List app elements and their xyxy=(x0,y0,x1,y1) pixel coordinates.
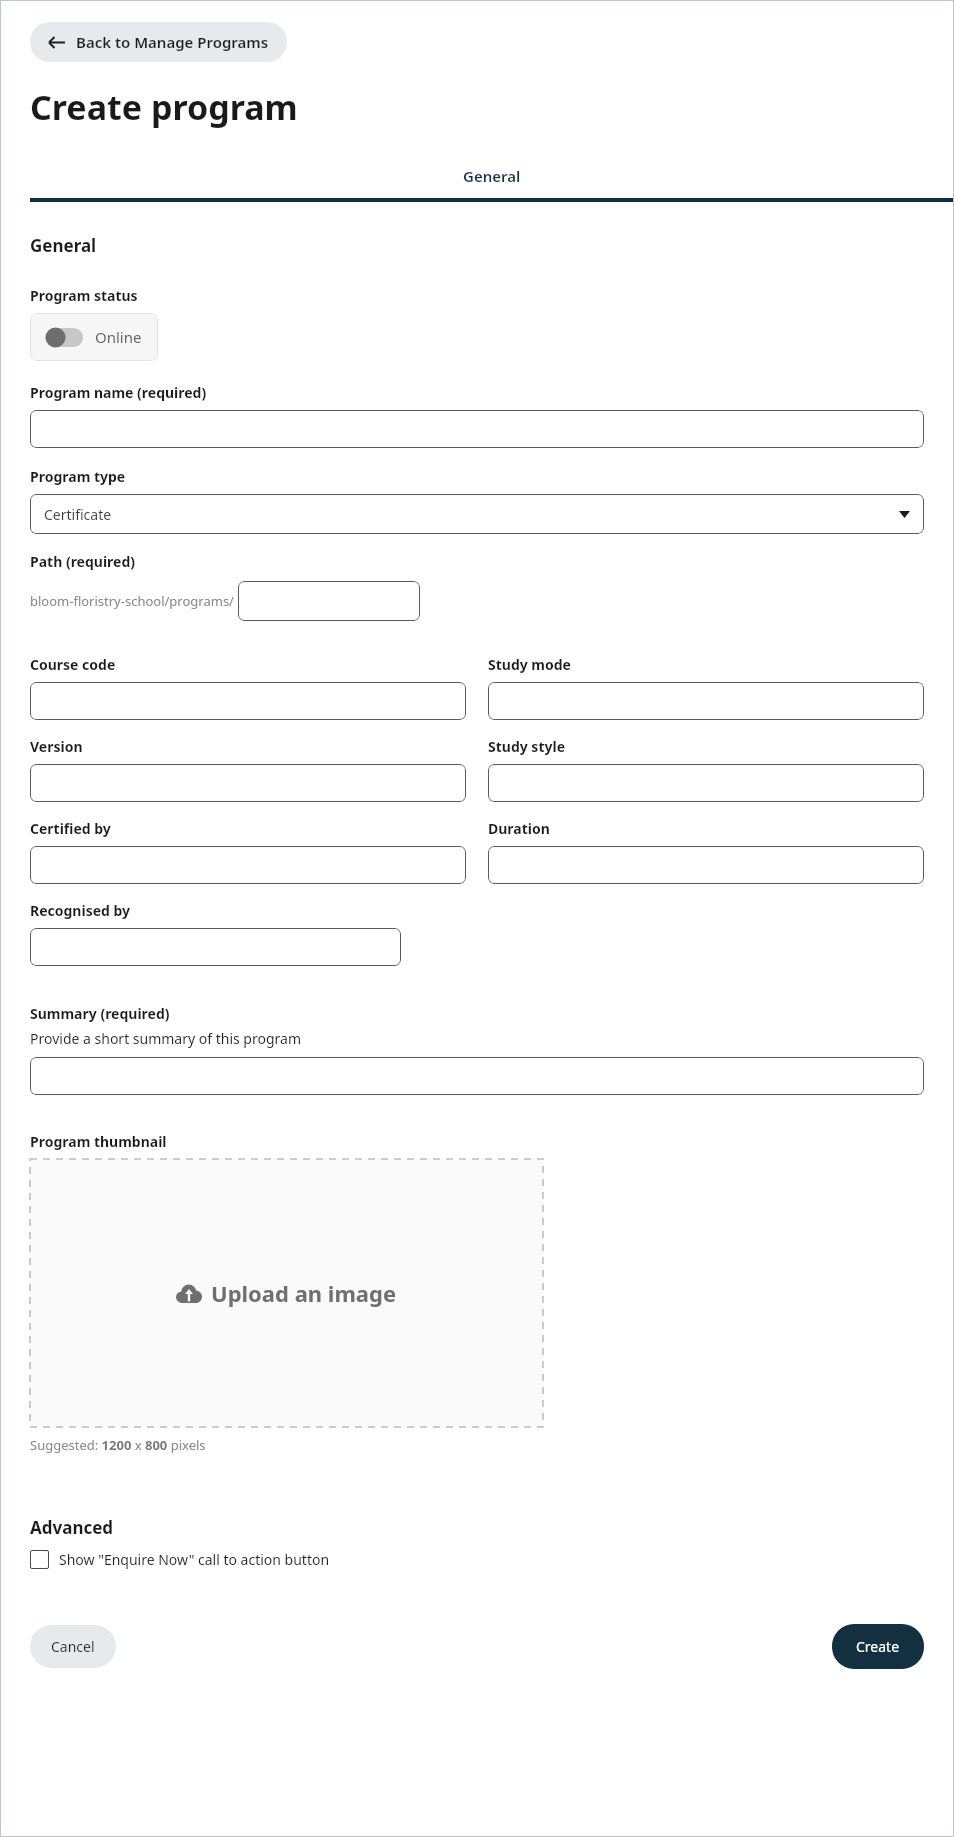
button[interactable] xyxy=(30,682,466,720)
staticText: Suggested: 1200 x 800 pixels xyxy=(30,1436,206,1454)
button[interactable] xyxy=(238,581,420,621)
staticText: Create program xyxy=(30,84,298,130)
button[interactable]: Certificate xyxy=(30,494,924,534)
staticText: Online xyxy=(95,327,142,347)
button[interactable]: Back to Manage Programs xyxy=(30,22,287,62)
staticText: Version xyxy=(30,737,83,756)
staticText: Path (required) xyxy=(30,552,136,571)
staticText: Upload an image xyxy=(211,1278,397,1308)
button[interactable]: General xyxy=(30,160,954,202)
staticText: Program status xyxy=(30,286,138,305)
staticText: Provide a short summary of this program xyxy=(30,1029,302,1048)
button[interactable]: Show "Enquire Now" call to action button xyxy=(30,1550,330,1569)
staticText: Duration xyxy=(488,819,550,838)
button[interactable] xyxy=(30,928,401,966)
staticText: Course code xyxy=(30,655,116,674)
button[interactable]: Cancel xyxy=(30,1625,116,1668)
staticText: Program thumbnail xyxy=(30,1132,167,1151)
staticText: Study mode xyxy=(488,655,571,674)
button[interactable] xyxy=(488,846,924,884)
staticText: Certified by xyxy=(30,819,111,838)
button[interactable]: Create xyxy=(832,1624,924,1669)
button[interactable] xyxy=(30,1057,924,1095)
staticText: Summary (required) xyxy=(30,1004,170,1023)
staticText: Program type xyxy=(30,467,126,486)
button[interactable]: Upload an image xyxy=(30,1159,543,1427)
staticText: Cancel xyxy=(51,1637,95,1656)
staticText: Back to Manage Programs xyxy=(76,32,269,52)
staticText: Create xyxy=(856,1637,900,1656)
staticText: General xyxy=(463,166,521,186)
staticText: General xyxy=(30,234,97,257)
button[interactable]: Online xyxy=(30,313,158,361)
staticText: Show "Enquire Now" call to action button xyxy=(59,1550,330,1569)
button[interactable] xyxy=(30,764,466,802)
staticText: Program name (required) xyxy=(30,383,207,402)
button[interactable] xyxy=(488,764,924,802)
button[interactable] xyxy=(30,410,924,448)
staticText: Study style xyxy=(488,737,565,756)
staticText: Advanced xyxy=(30,1516,114,1539)
button[interactable] xyxy=(30,846,466,884)
staticText: Certificate xyxy=(44,505,112,524)
staticText: Recognised by xyxy=(30,901,131,920)
staticText: bloom-floristry-school/programs/ xyxy=(30,592,234,610)
button[interactable] xyxy=(488,682,924,720)
